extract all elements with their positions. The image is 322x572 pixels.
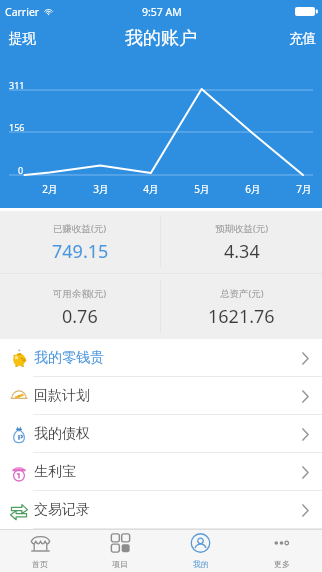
staticText: 生利宝 [34,463,76,481]
button[interactable]: 回款计划 [0,377,322,415]
button[interactable]: 我的 [160,530,241,572]
staticText: 0 [18,164,24,176]
button[interactable]: 预期收益(元) [161,211,322,273]
staticText: 3月 [86,182,116,196]
staticText: Carrier [5,5,40,19]
button[interactable]: 我的债权 [0,415,322,453]
button[interactable]: 生利宝 [0,453,322,491]
staticText: 5月 [187,182,217,196]
staticText: 9:57 AM [142,5,182,19]
staticText: 4月 [136,182,166,196]
staticText: 交易记录 [34,501,90,519]
staticText: 2月 [35,182,65,196]
staticText: 我的 [193,559,209,569]
staticText: 提现 [9,30,36,47]
button[interactable]: 首页 [0,530,80,572]
staticText: 首页 [32,559,48,569]
staticText: 总资产(元) [220,287,264,300]
staticText: 预期收益(元) [215,222,269,235]
button[interactable]: 已赚收益(元) [0,211,160,273]
staticText: 已赚收益(元) [53,222,107,235]
staticText: 0.76 [62,304,98,329]
button[interactable]: 更多 [241,530,322,572]
button[interactable]: 充值 [275,24,322,55]
staticText: 311 [9,79,25,91]
button[interactable]: 总资产(元) [161,274,322,339]
staticText: 可用余额(元) [53,287,107,300]
button[interactable]: 提现 [0,24,50,55]
button[interactable]: 可用余额(元) [0,274,160,339]
staticText: 4.34 [224,239,260,264]
button[interactable]: 交易记录 [0,491,322,529]
staticText: 6月 [238,182,268,196]
staticText: 749.15 [52,239,109,264]
staticText: 1621.76 [208,304,275,329]
staticText: 156 [9,121,25,133]
button[interactable]: 项目 [80,530,160,572]
staticText: 我的债权 [34,425,90,443]
staticText: 我的账户 [125,27,197,50]
staticText: 项目 [112,559,128,569]
staticText: 更多 [274,559,290,569]
staticText: 充值 [289,30,316,47]
staticText: 回款计划 [34,387,90,405]
button[interactable]: 我的零钱贵 [0,339,322,377]
staticText: 7月 [289,182,319,196]
staticText: 我的零钱贵 [34,349,104,367]
